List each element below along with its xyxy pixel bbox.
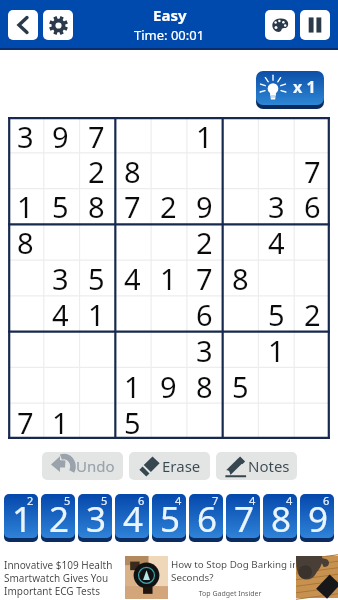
button[interactable]: 6 (186, 295, 222, 331)
button[interactable] (150, 403, 186, 439)
button[interactable]: Settings (43, 10, 73, 40)
staticText: 6 (197, 495, 218, 538)
button[interactable] (8, 331, 43, 367)
button[interactable]: 4 (114, 259, 150, 295)
button[interactable]: Back (8, 10, 38, 40)
button[interactable]: 7 (186, 259, 222, 295)
button[interactable] (114, 223, 150, 259)
button[interactable] (114, 331, 150, 367)
button[interactable] (294, 403, 330, 439)
button[interactable]: 9 (43, 117, 78, 152)
button[interactable] (294, 367, 330, 403)
button[interactable]: 7 (78, 117, 114, 152)
button[interactable]: Erase (129, 452, 210, 480)
button[interactable] (222, 403, 258, 439)
button[interactable] (294, 259, 330, 295)
button[interactable] (8, 152, 43, 187)
button[interactable] (43, 152, 78, 187)
button[interactable]: 1 (114, 367, 150, 403)
button[interactable]: 2 (150, 187, 186, 223)
button[interactable]: 2 (186, 223, 222, 259)
button[interactable] (8, 295, 43, 331)
button[interactable]: 5 (78, 259, 114, 295)
button[interactable]: 2 (294, 295, 330, 331)
button[interactable] (258, 367, 294, 403)
button[interactable] (150, 223, 186, 259)
button[interactable]: 6 (189, 494, 223, 538)
button[interactable]: Notes (216, 452, 297, 480)
button[interactable] (294, 331, 330, 367)
button[interactable]: 2 (41, 494, 75, 538)
button[interactable]: 5 (258, 295, 294, 331)
button[interactable] (150, 331, 186, 367)
button[interactable]: 5 (114, 403, 150, 439)
button[interactable] (150, 295, 186, 331)
button[interactable]: 4 (43, 295, 78, 331)
button[interactable] (78, 223, 114, 259)
button[interactable]: 7 (114, 187, 150, 223)
button[interactable] (222, 223, 258, 259)
button[interactable]: Theme (265, 10, 295, 40)
button[interactable]: 5 (43, 187, 78, 223)
button[interactable] (43, 223, 78, 259)
button[interactable] (258, 403, 294, 439)
button[interactable]: 4 (115, 494, 149, 538)
button[interactable]: 1 (43, 403, 78, 439)
button[interactable]: 1 (8, 187, 43, 223)
button[interactable]: 3 (258, 187, 294, 223)
button[interactable]: 8 (263, 494, 297, 538)
button[interactable] (222, 187, 258, 223)
button[interactable]: 9 (150, 367, 186, 403)
button[interactable] (258, 152, 294, 187)
button[interactable]: 3 (186, 331, 222, 367)
button[interactable]: 3 (43, 259, 78, 295)
button[interactable]: 8 (78, 187, 114, 223)
button[interactable] (150, 117, 186, 152)
button[interactable]: Undo (42, 452, 123, 480)
button[interactable]: 3 (78, 494, 112, 538)
button[interactable] (222, 331, 258, 367)
button[interactable] (150, 152, 186, 187)
button[interactable]: 2 (78, 152, 114, 187)
button[interactable]: 9 (300, 494, 334, 538)
button[interactable]: 1 (258, 331, 294, 367)
button[interactable]: 7 (294, 152, 330, 187)
button[interactable] (222, 117, 258, 152)
button[interactable]: 5 (222, 367, 258, 403)
button[interactable]: 9 (186, 187, 222, 223)
button[interactable] (114, 295, 150, 331)
button[interactable]: 5 (152, 494, 186, 538)
button[interactable] (43, 331, 78, 367)
button[interactable] (258, 259, 294, 295)
button[interactable]: 3 (8, 117, 43, 152)
button[interactable] (43, 367, 78, 403)
button[interactable]: 8 (114, 152, 150, 187)
button[interactable] (78, 331, 114, 367)
button[interactable]: 1 (186, 117, 222, 152)
button[interactable] (78, 367, 114, 403)
button[interactable]: 8 (186, 367, 222, 403)
button[interactable] (186, 403, 222, 439)
button[interactable]: 6 (294, 187, 330, 223)
button[interactable]: 7 (226, 494, 260, 538)
button[interactable]: Hint (256, 71, 324, 105)
button[interactable]: Pause (300, 10, 330, 40)
button[interactable] (222, 152, 258, 187)
button[interactable] (294, 223, 330, 259)
button[interactable]: 1 (78, 295, 114, 331)
staticText: Top Gadget Insider (171, 589, 289, 599)
button[interactable] (186, 152, 222, 187)
button[interactable]: 1 (150, 259, 186, 295)
button[interactable]: 8 (222, 259, 258, 295)
button[interactable]: 7 (8, 403, 43, 439)
button[interactable] (8, 259, 43, 295)
button[interactable] (78, 403, 114, 439)
button[interactable] (222, 295, 258, 331)
button[interactable] (8, 367, 43, 403)
button[interactable] (258, 117, 294, 152)
button[interactable] (114, 117, 150, 152)
button[interactable]: 8 (8, 223, 43, 259)
button[interactable]: 4 (258, 223, 294, 259)
button[interactable] (294, 117, 330, 152)
button[interactable]: 1 (4, 494, 38, 538)
